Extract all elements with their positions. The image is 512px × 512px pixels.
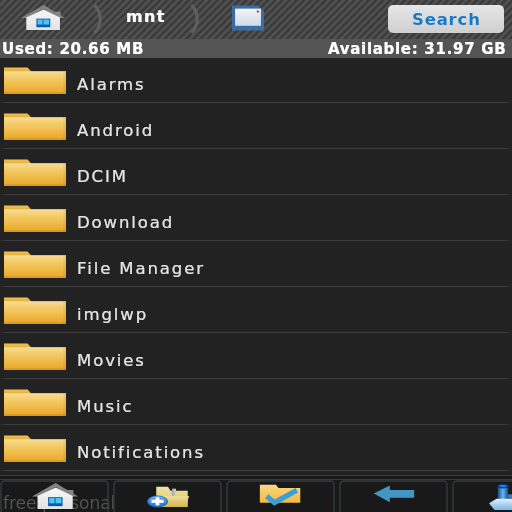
staticText: Download — [77, 213, 175, 232]
button[interactable]: Back — [340, 481, 447, 512]
staticText: Android — [77, 121, 155, 140]
staticText: File Manager — [77, 259, 205, 278]
button[interactable]: File Manager — [0, 242, 512, 288]
button[interactable]: Alarms — [0, 58, 512, 104]
staticText: Alarms — [77, 75, 146, 94]
button[interactable]: Select folder — [227, 481, 334, 512]
button[interactable]: imglwp — [0, 288, 512, 334]
staticText: Notifications — [77, 443, 205, 462]
button[interactable]: New folder — [114, 481, 221, 512]
staticText: Used: 20.66 MB — [2, 40, 145, 57]
button[interactable]: Notifications — [0, 426, 512, 472]
staticText: mnt — [126, 7, 166, 26]
button[interactable]: Home — [0, 0, 88, 39]
staticText: DCIM — [77, 167, 128, 186]
button[interactable]: USB — [453, 481, 512, 512]
button[interactable]: Movies — [0, 334, 512, 380]
button[interactable]: Music — [0, 380, 512, 426]
button[interactable]: Home — [1, 481, 108, 512]
button[interactable]: Search — [388, 5, 504, 33]
button[interactable]: SD card — [231, 5, 265, 31]
staticText: Movies — [77, 351, 146, 370]
button[interactable]: Android — [0, 104, 512, 150]
staticText: Search — [412, 10, 481, 29]
staticText: free personal — [3, 493, 116, 512]
button[interactable]: DCIM — [0, 150, 512, 196]
staticText: Music — [77, 397, 134, 416]
button[interactable]: Download — [0, 196, 512, 242]
staticText: imglwp — [77, 305, 149, 324]
staticText: Available: 31.97 GB — [328, 40, 507, 57]
